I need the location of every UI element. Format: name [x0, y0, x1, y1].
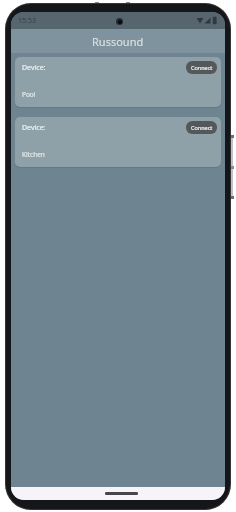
button[interactable]: Connect: [186, 121, 217, 134]
staticText: Russound: [92, 34, 144, 49]
staticText: Kitchen: [22, 150, 45, 159]
staticText: Connect: [191, 64, 213, 71]
staticText: Device:: [22, 123, 46, 133]
button[interactable]: Device:: [15, 57, 221, 107]
staticText: 15:53: [18, 16, 36, 26]
button[interactable]: Connect: [186, 61, 217, 74]
staticText: Connect: [191, 124, 213, 131]
staticText: Device:: [22, 63, 46, 73]
staticText: Pool: [22, 90, 36, 99]
button[interactable]: Device:: [15, 117, 221, 167]
